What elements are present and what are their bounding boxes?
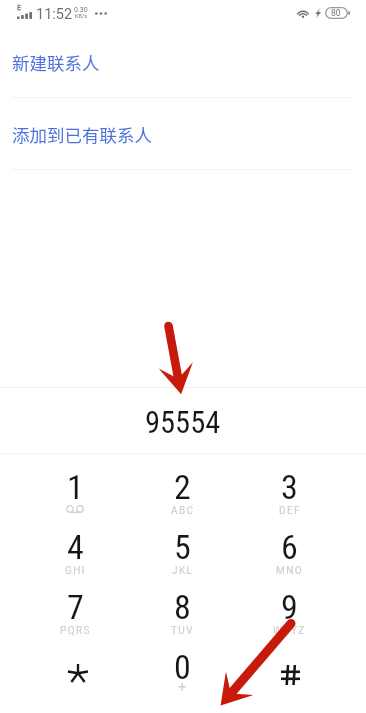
staticText: 7 bbox=[67, 587, 84, 627]
staticText: 添加到已有联系人 bbox=[12, 122, 152, 147]
staticText: 4 bbox=[67, 527, 84, 567]
staticText: 5 bbox=[174, 527, 191, 567]
staticText: JKL bbox=[172, 565, 194, 577]
staticText: 新建联系人 bbox=[12, 50, 100, 75]
staticText: 6 bbox=[281, 527, 298, 567]
button[interactable]: Key 6 bbox=[236, 514, 343, 574]
button[interactable]: 添加到已有联系人 bbox=[0, 120, 366, 166]
button[interactable]: Key 2 bbox=[129, 454, 236, 514]
staticText: ABC bbox=[171, 505, 195, 517]
other: Signal strength bbox=[17, 12, 32, 19]
staticText: KB/s bbox=[75, 13, 87, 19]
button[interactable]: Key * bbox=[21, 634, 129, 694]
staticText: 0.30 bbox=[74, 6, 88, 14]
staticText: 95554 bbox=[145, 405, 221, 441]
button[interactable]: Key 1 bbox=[21, 454, 129, 514]
button[interactable]: 95554 bbox=[0, 390, 366, 456]
staticText: 2 bbox=[174, 467, 191, 507]
staticText: 9 bbox=[281, 587, 298, 627]
staticText: 11:52 bbox=[36, 6, 73, 23]
staticText: WXYZ bbox=[273, 625, 306, 637]
button[interactable]: Key 4 bbox=[21, 514, 129, 574]
button[interactable]: 新建联系人 bbox=[0, 48, 366, 94]
staticText: MNO bbox=[276, 565, 303, 577]
staticText: 3 bbox=[281, 467, 298, 507]
other: Charging bbox=[315, 8, 321, 18]
button[interactable]: Key 5 bbox=[129, 514, 236, 574]
other: Wi-Fi bbox=[296, 8, 310, 19]
button[interactable]: Key 7 bbox=[21, 574, 129, 634]
button[interactable]: Key 8 bbox=[129, 574, 236, 634]
staticText: + bbox=[178, 678, 187, 696]
staticText: 8 bbox=[174, 587, 191, 627]
staticText: E bbox=[17, 4, 21, 12]
staticText: 1 bbox=[67, 467, 84, 507]
staticText: TUV bbox=[171, 625, 195, 637]
staticText: DEF bbox=[279, 505, 301, 517]
button[interactable]: Key 3 bbox=[236, 454, 343, 514]
staticText: GHI bbox=[65, 565, 86, 577]
staticText: 80 bbox=[331, 8, 341, 18]
button[interactable]: Key 9 bbox=[236, 574, 343, 634]
other: More bbox=[95, 8, 107, 18]
button[interactable]: Key 0 bbox=[129, 634, 236, 694]
staticText: 0 bbox=[174, 647, 191, 687]
button[interactable]: Key # bbox=[236, 634, 343, 694]
staticText: PQRS bbox=[60, 625, 91, 637]
